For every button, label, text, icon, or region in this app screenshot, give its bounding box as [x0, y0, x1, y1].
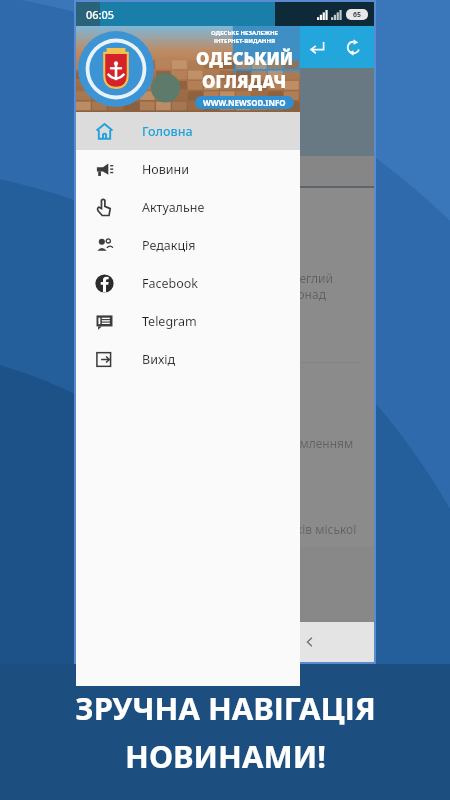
- staticText: НОВИНАМИ!: [125, 735, 326, 777]
- staticText: Редакція: [142, 237, 196, 254]
- staticText: ІНТЕРНЕТ-ВИДАННЯ: [214, 37, 276, 45]
- staticText: Вихід: [142, 351, 176, 368]
- staticText: Новини: [142, 161, 189, 178]
- staticText: ПОКАЗАТИ ВСІ НОВИНИ: [158, 164, 293, 179]
- staticText: Telegram: [142, 313, 197, 330]
- button[interactable]: Telegram: [76, 302, 300, 340]
- button[interactable]: Редакція: [76, 226, 300, 264]
- button[interactable]: Вихід: [76, 340, 300, 378]
- staticText: ОГЛЯДАЧ: [202, 70, 287, 93]
- staticText: ОДЕСЬКЕ НЕЗАЛЕЖНЕ: [211, 29, 278, 37]
- button[interactable]: Refresh: [338, 32, 368, 62]
- button[interactable]: Back: [84, 31, 116, 63]
- staticText: ЗРУЧНА НАВІГАЦІЯ: [75, 687, 376, 729]
- button[interactable]: Enter: [302, 32, 332, 62]
- button[interactable]: Back: [290, 622, 330, 662]
- staticText: Містян закликали стежити за повідомлення…: [88, 435, 362, 467]
- button[interactable]: Новини: [76, 150, 300, 188]
- staticText: 06:05: [86, 7, 115, 22]
- staticText: ОДЕСЬКИЙ: [196, 47, 294, 70]
- staticText: За даними народного з представників місь…: [88, 521, 357, 537]
- staticText: У ніч на середу ворог атакував прилеглий…: [88, 270, 362, 318]
- staticText: Актуальне: [142, 199, 205, 216]
- staticText: Facebook: [142, 275, 199, 292]
- staticText: тривало близько години: [88, 244, 196, 256]
- staticText: Головна: [142, 123, 193, 140]
- staticText: 65: [353, 10, 362, 20]
- button[interactable]: Актуальне: [76, 188, 300, 226]
- staticText: Одеський Оглядач: [124, 37, 268, 58]
- staticText: Окупанти вдарили по Одесі, є безпілотник…: [88, 198, 362, 234]
- button[interactable]: Facebook: [76, 264, 300, 302]
- button[interactable]: Головна: [76, 112, 300, 150]
- staticText: WWW.NEWSOD.INFO: [203, 97, 286, 108]
